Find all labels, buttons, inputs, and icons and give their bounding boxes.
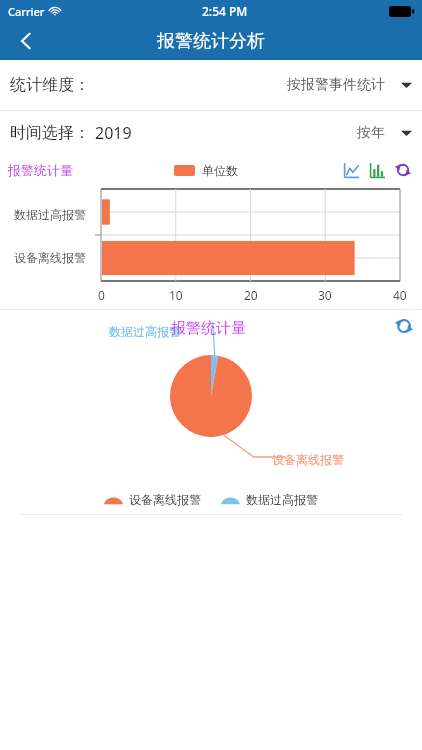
- staticText: 设备离线报警: [272, 452, 344, 467]
- button[interactable]: 数据过高报警: [221, 492, 318, 507]
- staticText: 报警统计量: [171, 319, 246, 338]
- staticText: 报警统计量: [8, 162, 73, 178]
- staticText: 2019: [95, 122, 132, 144]
- button[interactable]: 设备离线报警: [104, 492, 201, 507]
- staticText: 30: [318, 287, 332, 303]
- button[interactable]: 统计维度：: [0, 60, 422, 110]
- button[interactable]: Line chart view: [340, 159, 362, 181]
- button[interactable]: Refresh pie chart: [391, 313, 417, 339]
- staticText: 10: [169, 287, 183, 303]
- button[interactable]: Back: [6, 22, 46, 60]
- staticText: 2:54 PM: [202, 3, 248, 19]
- staticText: 数据过高报警: [109, 324, 181, 339]
- staticText: 40: [393, 287, 407, 303]
- staticText: 按年: [357, 124, 385, 142]
- staticText: 20: [244, 287, 258, 303]
- staticText: 数据过高报警: [14, 207, 86, 222]
- staticText: 时间选择：: [10, 123, 90, 143]
- button[interactable]: 时间选择：: [0, 111, 422, 155]
- staticText: 数据过高报警: [246, 492, 318, 507]
- staticText: 设备离线报警: [129, 492, 201, 507]
- button[interactable]: Refresh chart: [392, 159, 414, 181]
- staticText: 单位数: [202, 163, 238, 178]
- staticText: 统计维度：: [10, 75, 90, 95]
- staticText: 按报警事件统计: [287, 76, 385, 94]
- staticText: Carrier: [8, 4, 45, 19]
- staticText: 0: [98, 287, 105, 303]
- staticText: 报警统计分析: [157, 30, 265, 53]
- button[interactable]: Bar chart view: [366, 159, 388, 181]
- staticText: 设备离线报警: [14, 250, 86, 265]
